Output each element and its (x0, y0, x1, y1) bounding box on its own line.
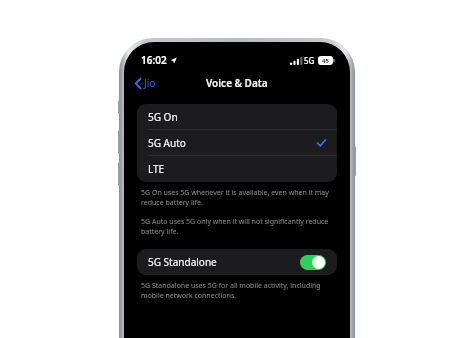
staticText: LTE (148, 162, 165, 176)
staticText: 5G (304, 55, 315, 66)
other: 5G Standalone toggle, on (300, 255, 326, 270)
staticText: 5G Standalone (148, 255, 217, 269)
button[interactable]: 5G On (137, 104, 337, 130)
staticText: 16:02 (141, 53, 167, 67)
staticText: Jio (144, 76, 156, 90)
staticText: 45 (322, 57, 329, 65)
staticText: 5G Standalone uses 5G for all mobile act… (141, 281, 333, 301)
button[interactable]: 5G Auto (137, 130, 337, 156)
button[interactable]: LTE (137, 156, 337, 182)
staticText: Voice & Data (206, 76, 268, 90)
staticText: 5G Auto (148, 136, 186, 150)
staticText: 5G Auto uses 5G only when it will not si… (141, 217, 333, 237)
button[interactable]: Jio (124, 73, 162, 93)
staticText: 5G On uses 5G whenever it is available, … (141, 188, 333, 208)
staticText: 5G On (148, 110, 178, 124)
button[interactable]: 5G Standalone (137, 249, 337, 275)
